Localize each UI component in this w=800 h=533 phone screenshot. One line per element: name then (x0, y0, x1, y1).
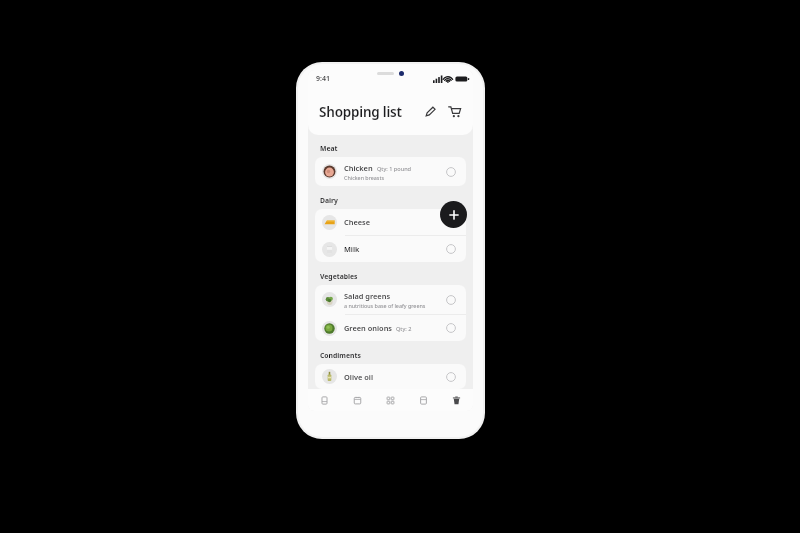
button[interactable]: Checked (444, 215, 458, 229)
button[interactable]: Trash (440, 389, 473, 411)
button[interactable]: Cheese (315, 209, 466, 235)
staticText: a nutritious base of leafy greens (344, 302, 426, 309)
staticText: Chicken breasts (344, 174, 384, 181)
button[interactable]: Lists (308, 389, 341, 411)
staticText: Olive oil (344, 372, 374, 382)
staticText: Shopping list (319, 103, 402, 121)
button[interactable]: Unchecked (444, 242, 458, 256)
staticText: Vegetables (320, 272, 358, 281)
staticText: Cheese (344, 217, 371, 227)
button[interactable]: Edit (420, 102, 439, 121)
button[interactable]: Salad greens (315, 285, 466, 314)
button[interactable]: Milk (315, 236, 466, 262)
button[interactable]: Unchecked (444, 293, 458, 307)
button[interactable]: Calendar (341, 389, 374, 411)
staticText: Dairy (320, 196, 338, 205)
button[interactable]: Green onions (315, 315, 466, 341)
button[interactable]: Unchecked (444, 370, 458, 384)
button[interactable]: Olive oil (315, 364, 466, 389)
button[interactable]: Add item (440, 201, 467, 228)
staticText: Chicken (344, 163, 373, 173)
button[interactable]: Notes (407, 389, 440, 411)
staticText: Qty: 1 pound (377, 165, 412, 173)
button[interactable]: Unchecked (444, 165, 458, 179)
staticText: Qty: 2 (396, 325, 412, 333)
button[interactable]: Cart (445, 102, 464, 121)
staticText: Green onions (344, 323, 392, 333)
staticText: Milk (344, 244, 360, 254)
staticText: Meat (320, 144, 338, 153)
button[interactable]: Chicken (315, 157, 466, 186)
staticText: Condiments (320, 351, 361, 360)
button[interactable]: Unchecked (444, 321, 458, 335)
staticText: 9:41 (316, 74, 330, 84)
button[interactable]: Categories (374, 389, 407, 411)
staticText: Salad greens (344, 291, 391, 301)
